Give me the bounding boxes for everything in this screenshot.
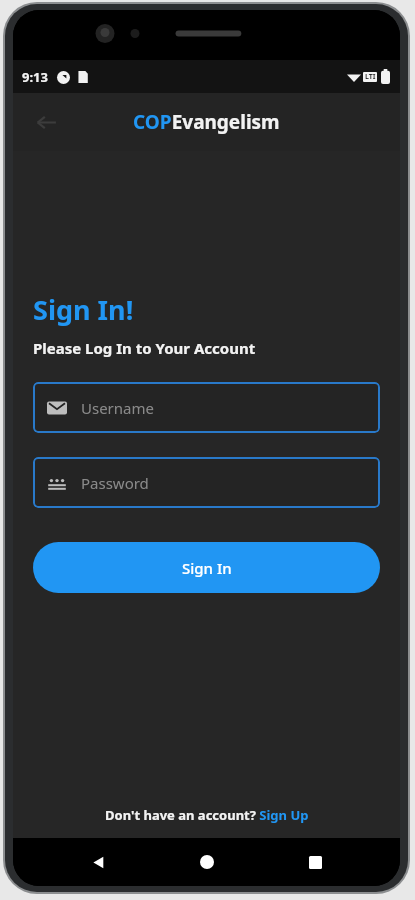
button[interactable]: Sign In <box>33 542 380 593</box>
staticText: Password <box>81 473 149 493</box>
staticText: COPEvangelism <box>133 109 280 135</box>
button[interactable]: Home <box>184 839 230 885</box>
staticText: Don't have an account? Sign Up <box>105 806 309 824</box>
button[interactable]: Don't have an account? Sign Up <box>105 806 309 824</box>
staticText: Username <box>81 398 154 418</box>
button[interactable]: Password <box>33 457 380 508</box>
button[interactable]: Back <box>75 839 121 885</box>
staticText: Sign In! <box>33 291 134 328</box>
staticText: Sign In <box>182 558 232 578</box>
staticText: LTI <box>365 72 376 82</box>
staticText: 9:13 <box>22 68 48 86</box>
staticText: Please Log In to Your Account <box>33 338 256 358</box>
button[interactable]: Back <box>29 105 63 139</box>
button[interactable]: Username <box>33 382 380 433</box>
button[interactable]: Recent apps <box>292 839 338 885</box>
